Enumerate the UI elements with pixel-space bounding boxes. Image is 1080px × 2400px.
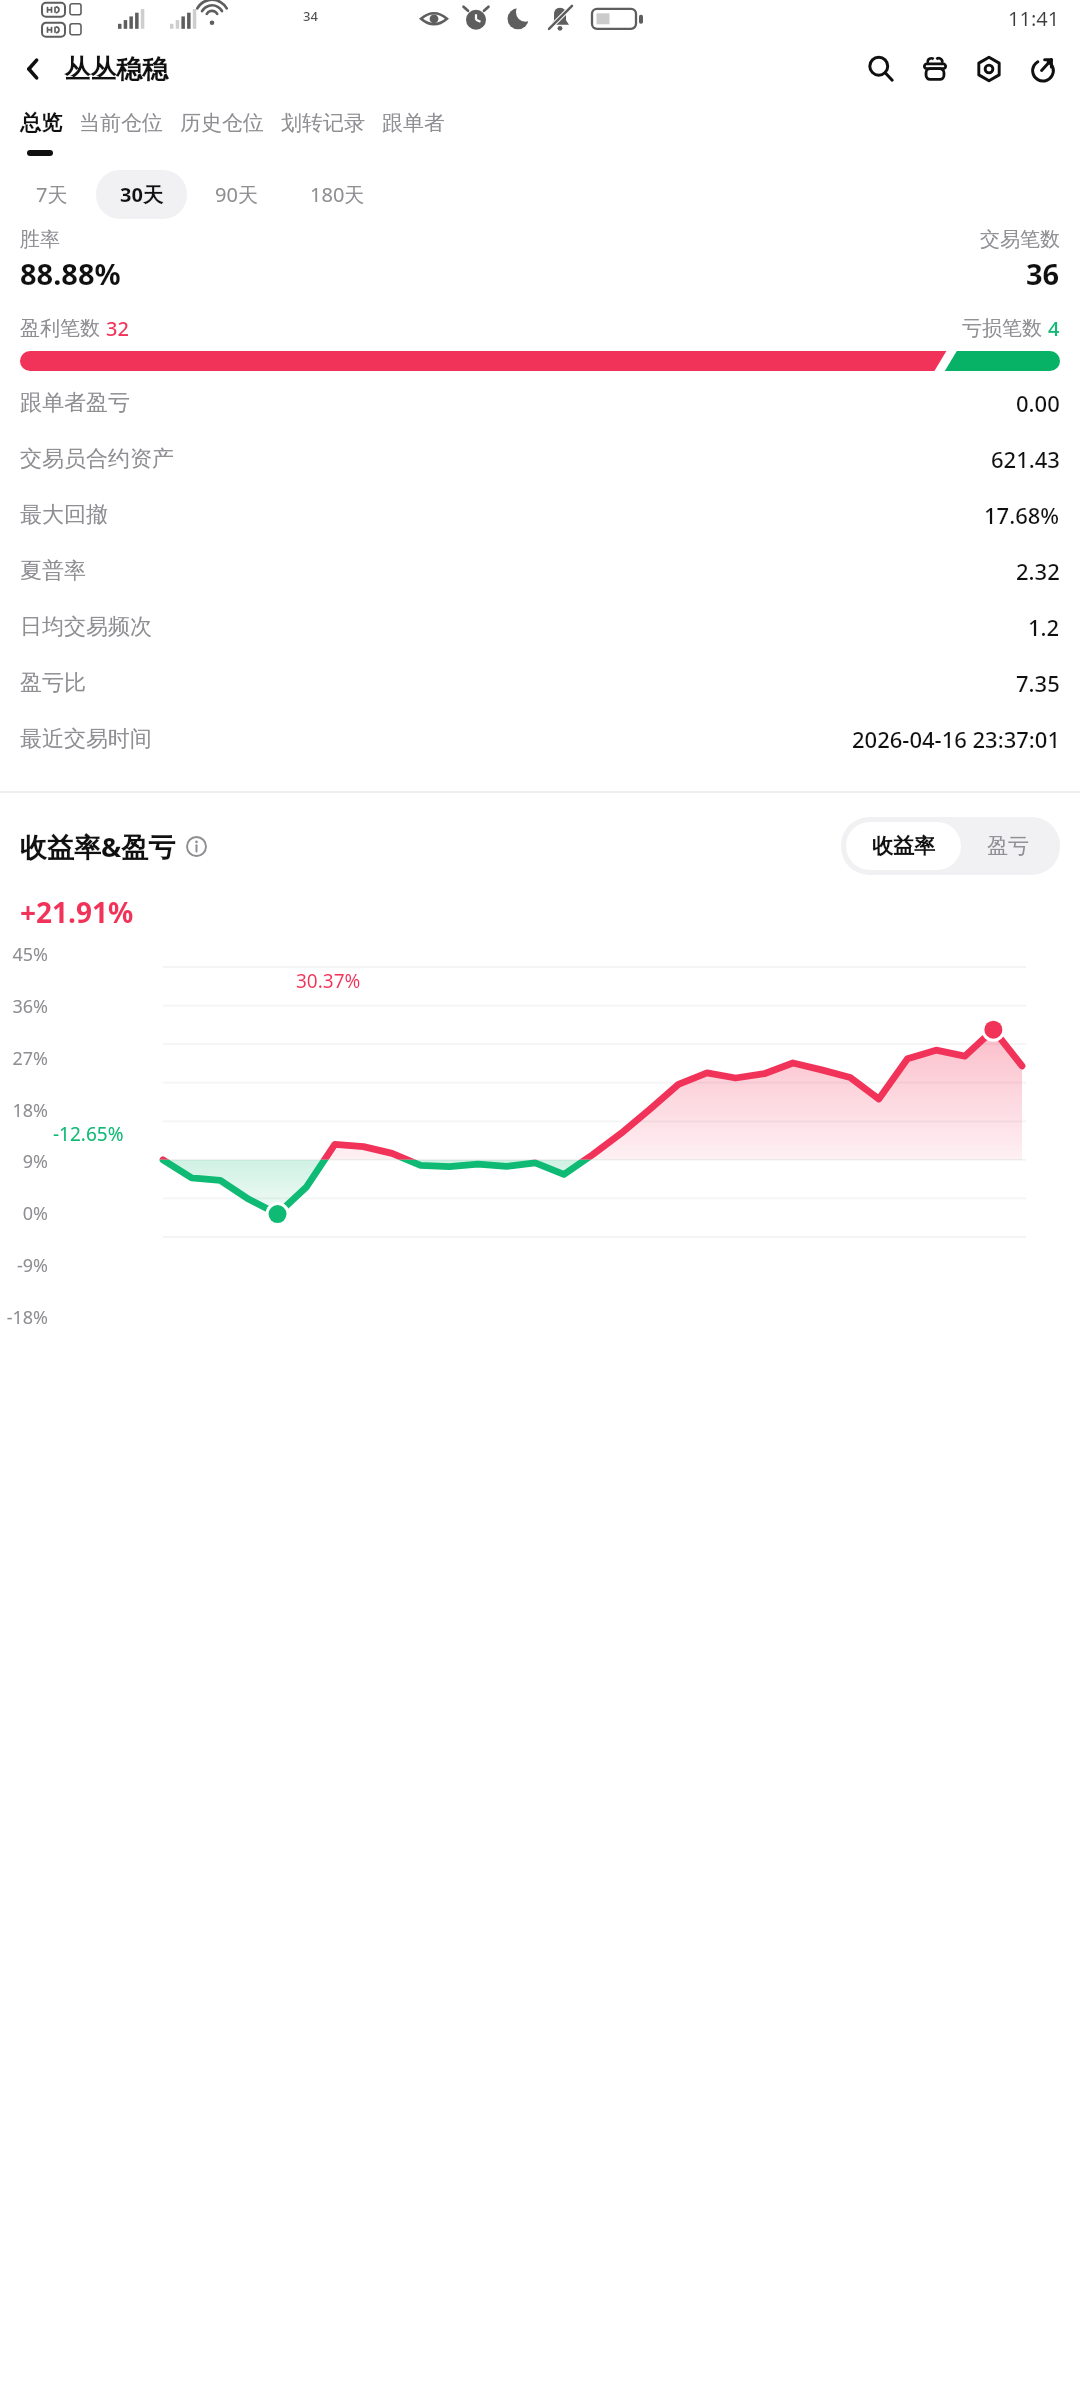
staticText: 收益率&盈亏	[20, 828, 176, 865]
staticText: 45%	[0, 942, 48, 967]
button[interactable]: Search	[854, 42, 908, 96]
staticText: 2.32	[1016, 556, 1060, 586]
button[interactable]: Rewards	[908, 42, 962, 96]
button[interactable]: 盈亏	[961, 822, 1055, 870]
staticText: +21.91%	[20, 893, 134, 931]
staticText: 划转记录	[281, 110, 365, 136]
button[interactable]: 交易员合约资产	[20, 431, 1060, 487]
staticText: 盈亏	[987, 833, 1029, 859]
staticText: 日均交易频次	[20, 613, 152, 641]
staticText: 亏损笔数	[962, 316, 1042, 341]
button[interactable]: 总览	[20, 102, 62, 144]
staticText: 交易笔数	[980, 227, 1060, 252]
staticText: 4	[1048, 315, 1060, 342]
staticText: 当前仓位	[79, 110, 163, 136]
staticText: 34	[303, 7, 318, 25]
button[interactable]: Settings	[962, 42, 1016, 96]
button[interactable]: 盈亏比	[20, 655, 1060, 711]
staticText: 0%	[0, 1201, 48, 1226]
staticText: -12.65%	[53, 1121, 124, 1147]
button[interactable]: 收益率	[846, 822, 961, 870]
staticText: -9%	[0, 1253, 48, 1278]
button[interactable]: 90天	[191, 170, 282, 219]
button[interactable]: 划转记录	[281, 102, 365, 144]
staticText: 0.00	[1016, 388, 1060, 418]
button[interactable]: Back	[6, 42, 60, 96]
button[interactable]: 日均交易频次	[20, 599, 1060, 655]
staticText: 跟单者盈亏	[20, 389, 130, 417]
staticText: 历史仓位	[180, 110, 264, 136]
button[interactable]: Info	[183, 833, 209, 859]
staticText: 32	[106, 315, 129, 342]
staticText: 盈亏比	[20, 669, 86, 697]
staticText: 17.68%	[984, 500, 1060, 530]
staticText: 18%	[0, 1098, 48, 1123]
staticText: 30.37%	[296, 968, 361, 994]
button[interactable]: 历史仓位	[180, 102, 264, 144]
staticText: 36	[1026, 254, 1060, 293]
staticText: 夏普率	[20, 557, 86, 585]
staticText: 盈利笔数	[20, 316, 100, 341]
staticText: 1.2	[1028, 612, 1060, 642]
staticText: 27%	[0, 1046, 48, 1071]
staticText: 最大回撤	[20, 501, 108, 529]
button[interactable]: Share	[1016, 42, 1070, 96]
staticText: 180天	[310, 181, 365, 208]
button[interactable]: 夏普率	[20, 543, 1060, 599]
staticText: 跟单者	[382, 110, 445, 136]
button[interactable]: 最大回撤	[20, 487, 1060, 543]
button[interactable]: 最近交易时间	[20, 711, 1060, 767]
staticText: 7.35	[1016, 668, 1060, 698]
staticText: 收益率	[872, 833, 935, 859]
staticText: 36%	[0, 994, 48, 1019]
staticText: 88.88%	[20, 254, 121, 293]
button[interactable]: 跟单者	[382, 102, 445, 144]
staticText: 11:41	[1008, 5, 1060, 32]
staticText: 7天	[36, 181, 68, 208]
staticText: 最近交易时间	[20, 725, 152, 753]
staticText: 丛丛稳稳	[64, 53, 168, 86]
button[interactable]: 30天	[96, 170, 187, 219]
staticText: 90天	[215, 181, 258, 208]
staticText: 总览	[20, 110, 62, 136]
button[interactable]: 180天	[286, 170, 389, 219]
staticText: 胜率	[20, 227, 60, 252]
button[interactable]: 当前仓位	[79, 102, 163, 144]
staticText: 2026-04-16 23:37:01	[852, 724, 1060, 754]
button[interactable]: 跟单者盈亏	[20, 375, 1060, 431]
staticText: 交易员合约资产	[20, 445, 174, 473]
staticText: 30天	[120, 181, 163, 208]
staticText: 621.43	[991, 444, 1060, 474]
staticText: -18%	[0, 1305, 48, 1330]
staticText: 9%	[0, 1149, 48, 1174]
button[interactable]: 7天	[12, 170, 92, 219]
